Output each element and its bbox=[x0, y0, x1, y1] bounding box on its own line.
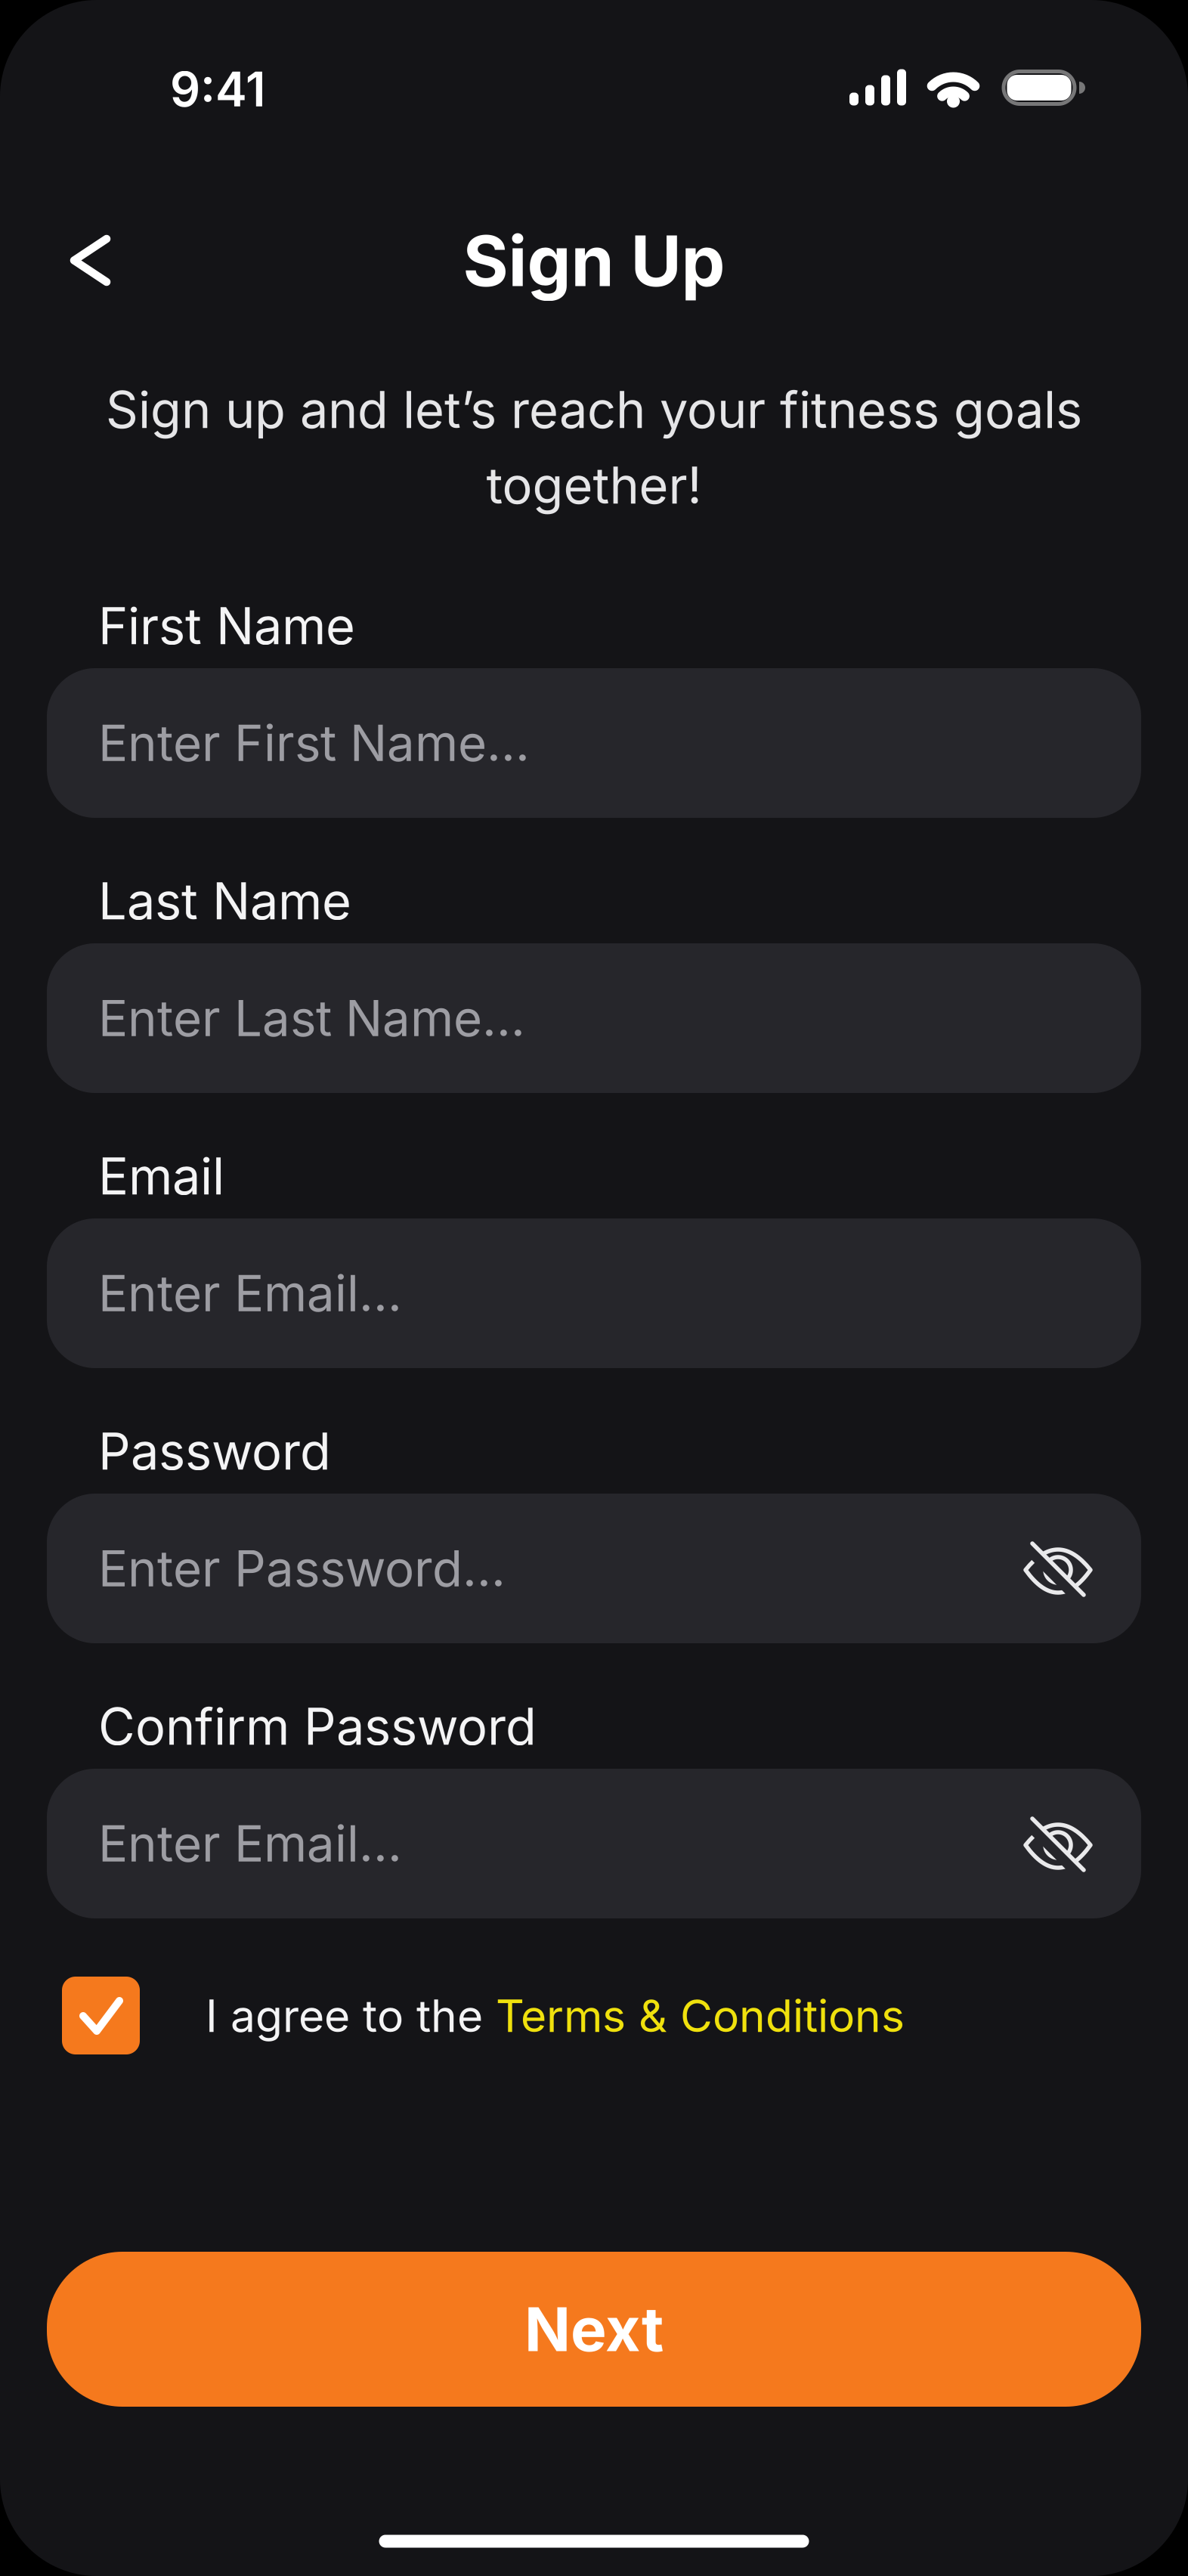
staticText: Confirm Password bbox=[98, 1696, 537, 1757]
staticText: together! bbox=[486, 455, 702, 516]
staticText: Enter First Name... bbox=[98, 713, 530, 773]
staticText: Last Name bbox=[98, 871, 351, 932]
staticText: 9:41 bbox=[170, 61, 265, 118]
staticText: Next bbox=[524, 2293, 664, 2366]
staticText: Email bbox=[98, 1146, 224, 1207]
staticText: Terms & Conditions bbox=[496, 1989, 905, 2043]
staticText: Enter Password... bbox=[98, 1539, 506, 1598]
staticText: Enter Email... bbox=[98, 1814, 402, 1873]
staticText: Password bbox=[98, 1421, 331, 1482]
staticText: Enter Last Name... bbox=[98, 988, 525, 1048]
staticText: Enter Email... bbox=[98, 1263, 402, 1323]
staticText: Sign up and let’s reach your fitness goa… bbox=[106, 379, 1082, 440]
staticText: I agree to the bbox=[206, 1989, 496, 2043]
staticText: First Name bbox=[98, 595, 355, 656]
staticText: Sign Up bbox=[463, 219, 725, 303]
